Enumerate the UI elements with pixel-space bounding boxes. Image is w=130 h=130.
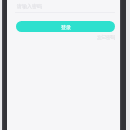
staticText: 登录 <box>61 24 71 30</box>
staticText: 忘记密码 <box>97 35 115 41</box>
button[interactable]: 忘记密码 <box>97 35 115 41</box>
staticText: 请输入密码 <box>17 3 42 9</box>
button[interactable]: 登录 <box>16 21 115 32</box>
button[interactable]: 请输入密码 <box>8 1 122 11</box>
